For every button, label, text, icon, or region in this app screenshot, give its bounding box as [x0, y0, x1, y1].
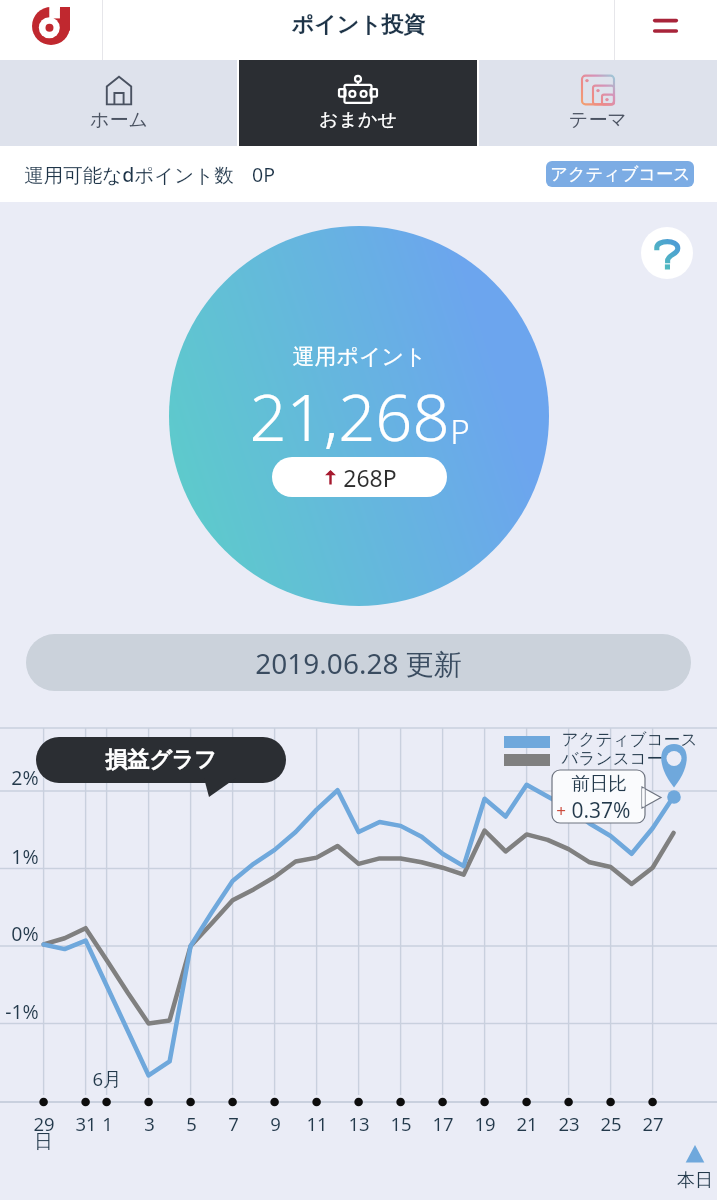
staticText: P	[450, 409, 470, 454]
staticText: 21,268	[249, 372, 450, 461]
button[interactable]: 2019.06.28 更新	[26, 634, 691, 691]
staticText: 31	[75, 1111, 97, 1136]
staticText: 本日	[677, 1169, 713, 1192]
staticText: おまかせ	[319, 108, 397, 132]
staticText: 前日比	[571, 772, 627, 795]
staticText: -1%	[5, 998, 39, 1025]
staticText: 0.37%	[571, 796, 631, 825]
staticText: アクティブコース	[550, 163, 691, 185]
staticText: 1%	[11, 843, 39, 870]
button[interactable]: Menu	[615, 0, 717, 60]
staticText: ポイント投資	[291, 11, 426, 39]
staticText: 日	[34, 1130, 53, 1153]
staticText: 1	[102, 1111, 113, 1136]
staticText: 2%	[11, 764, 39, 791]
button[interactable]: Help	[641, 227, 693, 279]
staticText: バランスコース	[561, 748, 681, 769]
staticText: 25	[600, 1111, 622, 1136]
staticText: 運用可能なdポイント数	[24, 161, 234, 188]
button[interactable]: おまかせ	[239, 60, 477, 146]
staticText: 5	[186, 1111, 197, 1136]
staticText: 268P	[343, 462, 397, 493]
staticText: 0%	[11, 920, 39, 947]
staticText: 9	[270, 1111, 281, 1136]
button[interactable]: 268P	[272, 457, 447, 497]
staticText: 損益グラフ	[105, 746, 217, 774]
staticText: 23	[558, 1111, 580, 1136]
staticText: 17	[432, 1111, 454, 1136]
staticText: テーマ	[569, 108, 627, 132]
staticText: 19	[474, 1111, 496, 1136]
staticText: ホーム	[90, 108, 148, 132]
staticText: 15	[390, 1111, 412, 1136]
staticText: 13	[348, 1111, 370, 1136]
staticText: 0P	[252, 161, 275, 188]
staticText: +	[556, 799, 566, 822]
staticText: 11	[306, 1111, 328, 1136]
staticText: 運用ポイント	[292, 343, 427, 371]
button[interactable]: アクティブコース	[546, 161, 694, 187]
staticText: 29	[33, 1111, 55, 1136]
button[interactable]: テーマ	[479, 60, 717, 146]
staticText: 2019.06.28 更新	[255, 644, 462, 682]
button[interactable]: 運用ポイント	[169, 226, 549, 606]
staticText: 21	[516, 1111, 538, 1136]
staticText: 7	[228, 1111, 239, 1136]
staticText: アクティブコース	[561, 729, 698, 750]
staticText: 3	[144, 1111, 155, 1136]
button[interactable]: dPoint	[0, 0, 102, 60]
button[interactable]: 損益グラフ	[36, 737, 286, 783]
staticText: 6月	[92, 1066, 122, 1091]
button[interactable]: ホーム	[0, 60, 237, 146]
staticText: 27	[642, 1111, 664, 1136]
